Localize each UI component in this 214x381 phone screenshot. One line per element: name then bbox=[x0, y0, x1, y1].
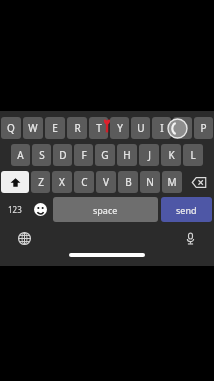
button[interactable]: O bbox=[173, 117, 192, 139]
staticText: A bbox=[17, 148, 24, 162]
button[interactable]: Shift bbox=[1, 171, 29, 193]
button[interactable]: send bbox=[161, 197, 212, 222]
button[interactable]: Voice input bbox=[178, 226, 202, 250]
button[interactable]: U bbox=[131, 117, 150, 139]
staticText: G bbox=[101, 148, 109, 162]
staticText: M bbox=[167, 175, 177, 189]
staticText: U bbox=[137, 121, 145, 135]
button[interactable]: L bbox=[183, 144, 203, 166]
button[interactable]: Change language bbox=[12, 226, 36, 250]
button[interactable]: E bbox=[45, 117, 65, 139]
button[interactable]: I bbox=[152, 117, 171, 139]
staticText: F bbox=[81, 148, 87, 162]
button[interactable]: B bbox=[118, 171, 138, 193]
staticText: S bbox=[39, 148, 45, 162]
button[interactable]: Y bbox=[110, 117, 129, 139]
staticText: D bbox=[59, 148, 67, 162]
button[interactable]: P bbox=[194, 117, 213, 139]
button[interactable]: N bbox=[140, 171, 160, 193]
button[interactable]: Z bbox=[31, 171, 50, 193]
staticText: Q bbox=[7, 121, 15, 135]
staticText: K bbox=[168, 148, 175, 162]
button[interactable]: J bbox=[139, 144, 159, 166]
staticText: E bbox=[52, 121, 58, 135]
staticText: 123 bbox=[8, 204, 22, 215]
staticText: R bbox=[74, 121, 81, 135]
staticText: T bbox=[96, 121, 102, 135]
button[interactable]: space bbox=[53, 197, 158, 222]
staticText: P bbox=[200, 121, 207, 135]
staticText: Z bbox=[38, 175, 44, 189]
staticText: C bbox=[81, 175, 88, 189]
button[interactable]: R bbox=[67, 117, 87, 139]
staticText: space bbox=[93, 204, 118, 216]
button[interactable]: X bbox=[52, 171, 72, 193]
staticText: J bbox=[148, 148, 151, 162]
button[interactable]: G bbox=[95, 144, 115, 166]
staticText: I bbox=[160, 121, 164, 135]
button[interactable]: T bbox=[89, 117, 108, 139]
button[interactable]: 123 bbox=[2, 197, 27, 222]
button[interactable]: C bbox=[74, 171, 94, 193]
button[interactable]: Emoji bbox=[30, 197, 50, 222]
button[interactable]: W bbox=[23, 117, 43, 139]
button[interactable]: A bbox=[11, 144, 30, 166]
staticText: W bbox=[28, 121, 38, 135]
button[interactable]: D bbox=[53, 144, 72, 166]
button[interactable]: K bbox=[161, 144, 181, 166]
staticText: X bbox=[59, 175, 65, 189]
staticText: send bbox=[176, 204, 197, 216]
button[interactable]: F bbox=[74, 144, 93, 166]
button[interactable]: Q bbox=[1, 117, 21, 139]
button[interactable]: S bbox=[32, 144, 51, 166]
staticText: L bbox=[190, 148, 196, 162]
staticText: B bbox=[125, 175, 132, 189]
button[interactable]: Backspace bbox=[184, 171, 213, 193]
staticText: V bbox=[103, 175, 109, 189]
button[interactable]: M bbox=[162, 171, 182, 193]
staticText: O bbox=[179, 121, 187, 135]
staticText: Y bbox=[117, 121, 123, 135]
button[interactable]: V bbox=[96, 171, 116, 193]
staticText: H bbox=[123, 148, 131, 162]
staticText: N bbox=[146, 175, 154, 189]
button[interactable]: H bbox=[117, 144, 137, 166]
